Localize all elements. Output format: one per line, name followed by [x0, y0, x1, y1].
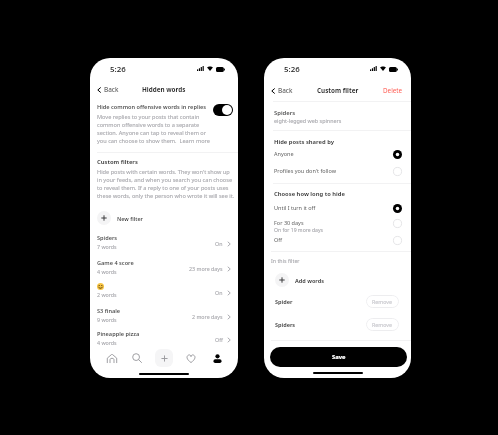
staticText: Spiders	[275, 321, 296, 328]
staticText: S3 finale	[97, 307, 121, 315]
button[interactable]: Add words	[275, 273, 324, 287]
staticText: 2 more days	[192, 313, 223, 320]
staticText: For 30 days	[274, 219, 304, 226]
button[interactable]: Back	[96, 85, 119, 94]
staticText: 2 words	[97, 291, 117, 298]
staticText: On	[215, 289, 223, 296]
button[interactable]: S3 finale	[90, 305, 238, 327]
staticText: Profiles you don't follow	[274, 167, 336, 174]
staticText: 5:26	[284, 64, 300, 75]
button[interactable]: Delete	[383, 86, 403, 95]
staticText: In this filter	[271, 257, 300, 264]
staticText: Back	[278, 86, 293, 95]
button[interactable]: Profiles you don't follow	[264, 166, 411, 179]
staticText: Spider	[275, 298, 293, 305]
staticText: Off	[215, 336, 223, 343]
button[interactable]: 2 words	[90, 281, 238, 303]
staticText: Until I turn it off	[274, 204, 316, 211]
staticText: 4 words	[97, 268, 117, 275]
staticText: New filter	[117, 215, 143, 222]
staticText: Move replies to your posts that contain …	[97, 113, 210, 145]
staticText: 5:26	[110, 64, 126, 75]
button[interactable]: Search	[129, 350, 145, 366]
button[interactable]: For 30 days	[264, 218, 411, 234]
staticText: Pineapple pizza	[97, 330, 140, 338]
button[interactable]: Home	[104, 350, 120, 366]
staticText: Spiders	[97, 234, 118, 242]
button[interactable]: Remove	[366, 318, 399, 331]
button[interactable]: Spiders	[90, 232, 238, 254]
staticText: Custom filter	[317, 86, 359, 95]
staticText: Remove	[372, 298, 393, 305]
button[interactable]: Game 4 score	[90, 257, 238, 279]
staticText: Hide common offensive words in replies	[97, 103, 207, 111]
staticText: Anyone	[274, 150, 294, 157]
staticText: Remove	[372, 321, 393, 328]
staticText: Delete	[383, 86, 403, 95]
staticText: eight-legged web spinners	[274, 117, 342, 124]
button[interactable]: Profile	[209, 350, 225, 366]
staticText: Custom filters	[97, 158, 138, 166]
staticText: Save	[332, 353, 346, 361]
button[interactable]: Create	[155, 349, 173, 367]
staticText: Game 4 score	[97, 259, 134, 267]
staticText: 9 words	[97, 316, 117, 323]
staticText: On for 19 more days	[274, 227, 323, 234]
staticText: Hidden words	[142, 85, 186, 94]
staticText: Hide posts with certain words. They won'…	[97, 168, 236, 200]
staticText: Hide posts shared by	[274, 138, 335, 146]
staticText: Off	[274, 236, 283, 243]
button[interactable]: Anyone	[264, 149, 411, 162]
staticText: 4 words	[97, 339, 117, 346]
button[interactable]: Remove	[366, 295, 399, 308]
staticText: Back	[104, 85, 119, 94]
button[interactable]: Until I turn it off	[264, 203, 411, 216]
button[interactable]: Hide offensive words toggle	[213, 104, 233, 116]
button[interactable]: Off	[264, 235, 411, 248]
button[interactable]: New filter	[97, 211, 143, 225]
button[interactable]: Back	[270, 86, 293, 95]
staticText: 7 words	[97, 243, 117, 250]
staticText: Add words	[295, 277, 324, 284]
button[interactable]: Activity	[183, 350, 199, 366]
staticText: On	[215, 240, 223, 247]
button[interactable]: Pineapple pizza	[90, 328, 238, 350]
button[interactable]: Save	[270, 347, 407, 367]
staticText: 23 more days	[189, 265, 223, 272]
staticText: Choose how long to hide	[274, 190, 345, 198]
staticText: Spiders	[274, 109, 296, 117]
